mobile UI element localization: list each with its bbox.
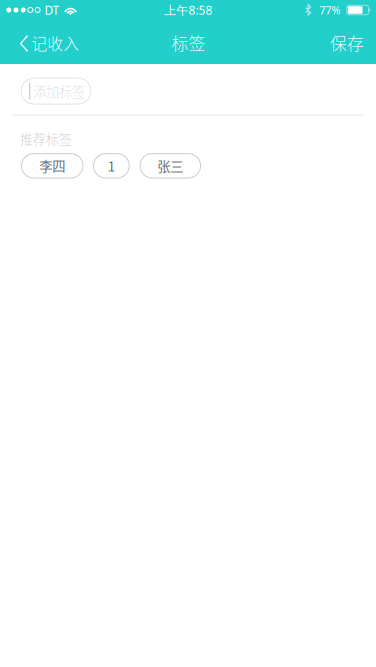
staticText: 李四 bbox=[39, 156, 65, 175]
staticText: 添加标签 bbox=[33, 81, 85, 101]
button[interactable]: 李四 bbox=[21, 154, 83, 178]
staticText: 标签 bbox=[171, 31, 205, 55]
staticText: 1 bbox=[108, 156, 115, 175]
staticText: DT bbox=[44, 2, 59, 18]
staticText: 上午8:58 bbox=[164, 2, 212, 18]
button[interactable]: 1 bbox=[93, 154, 129, 178]
button[interactable]: 保存 bbox=[318, 20, 376, 64]
button[interactable]: 记收入 bbox=[0, 20, 89, 64]
staticText: 77% bbox=[319, 3, 340, 17]
staticText: 推荐标签 bbox=[20, 129, 72, 148]
button[interactable]: 张三 bbox=[140, 154, 201, 178]
staticText: 保存 bbox=[330, 31, 364, 55]
staticText: 张三 bbox=[157, 156, 183, 175]
staticText: 记收入 bbox=[31, 31, 79, 54]
